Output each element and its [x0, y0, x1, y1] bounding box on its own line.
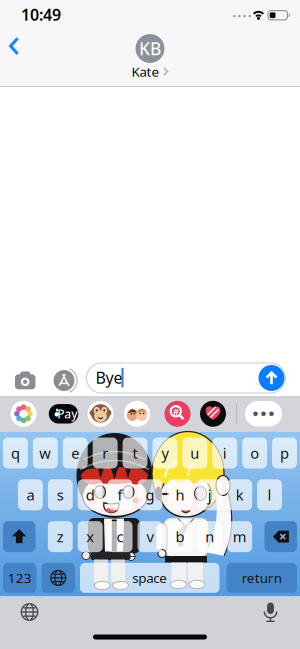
staticText: m [233, 527, 247, 546]
button[interactable]: z [48, 521, 73, 552]
staticText: Bye [95, 367, 122, 388]
staticText: f [118, 485, 123, 505]
staticText: # [173, 405, 179, 418]
button[interactable]: w [33, 437, 58, 468]
button[interactable]: r [93, 437, 118, 468]
button[interactable]: u [182, 437, 207, 468]
staticText: e [71, 443, 79, 463]
button[interactable]: Digital Touch [200, 401, 226, 427]
staticText: x [86, 527, 94, 546]
staticText: KB [139, 37, 161, 60]
staticText: t [132, 443, 137, 463]
button[interactable]: f [108, 479, 132, 510]
button[interactable]: s [48, 479, 73, 510]
staticText: 123 [8, 569, 32, 587]
button[interactable]: Kate profile [135, 34, 164, 63]
button[interactable]: g [137, 479, 162, 510]
staticText: Pay [57, 406, 77, 422]
button[interactable]: h [167, 479, 192, 510]
button[interactable]: Send [258, 365, 284, 391]
button[interactable]: c [108, 521, 133, 552]
button[interactable]: j [197, 479, 222, 510]
button[interactable]: n [197, 521, 222, 552]
staticText: return [242, 569, 282, 587]
staticText: g [145, 485, 154, 505]
button[interactable]: e [63, 437, 88, 468]
button[interactable]: Next keyboard [21, 604, 38, 620]
button[interactable]: l [257, 479, 282, 510]
staticText: k [236, 485, 244, 505]
staticText: z [57, 527, 64, 546]
staticText: 10:49 [21, 4, 61, 25]
staticText: u [190, 443, 199, 463]
staticText: h [175, 485, 184, 505]
staticText: n [205, 527, 214, 546]
staticText: s [57, 485, 64, 505]
staticText: o [250, 443, 259, 463]
staticText: c [117, 527, 124, 546]
button[interactable]: o [242, 437, 267, 468]
button[interactable]: Delete [264, 521, 297, 552]
button[interactable]: iMessage text field [86, 362, 286, 393]
staticText: i [223, 443, 227, 463]
staticText: space [132, 569, 167, 587]
button[interactable]: Apple Pay [49, 404, 78, 424]
staticText: p [280, 443, 289, 463]
staticText: j [208, 485, 212, 505]
button[interactable]: Photos [10, 401, 36, 427]
button[interactable]: Find images [164, 401, 190, 427]
button[interactable]: Memoji stickers [124, 401, 150, 427]
button[interactable]: v [137, 521, 162, 552]
staticText: w [39, 443, 51, 463]
button[interactable]: k [227, 479, 252, 510]
button[interactable]: iMessage apps [50, 367, 77, 394]
button[interactable]: Kate [131, 63, 169, 80]
button[interactable]: Next keyboard [41, 563, 75, 593]
button[interactable]: Animoji [87, 401, 113, 427]
button[interactable]: q [3, 437, 28, 468]
button[interactable]: return [226, 563, 297, 593]
staticText: b [175, 527, 184, 546]
staticText: l [268, 485, 272, 505]
button[interactable]: m [227, 521, 252, 552]
button[interactable]: d [78, 479, 103, 510]
button[interactable]: More apps [245, 401, 282, 427]
button[interactable]: x [78, 521, 103, 552]
button[interactable]: b [167, 521, 192, 552]
button[interactable]: Camera [13, 370, 37, 390]
button[interactable]: y [152, 437, 177, 468]
button[interactable]: p [272, 437, 297, 468]
button[interactable]: Back [9, 37, 20, 56]
staticText: y [161, 443, 168, 463]
staticText: q [11, 443, 20, 463]
button[interactable]: Dictation [260, 602, 280, 622]
staticText: r [102, 443, 108, 463]
button[interactable]: i [212, 437, 237, 468]
staticText: Kate [131, 63, 159, 80]
staticText: d [86, 485, 95, 505]
button[interactable]: 123 [3, 563, 36, 593]
button[interactable]: Shift [3, 521, 35, 552]
button[interactable]: t [123, 437, 147, 468]
button[interactable]: a [18, 479, 43, 510]
button[interactable]: space [80, 563, 219, 593]
staticText: a [26, 485, 34, 505]
staticText: v [146, 527, 153, 546]
